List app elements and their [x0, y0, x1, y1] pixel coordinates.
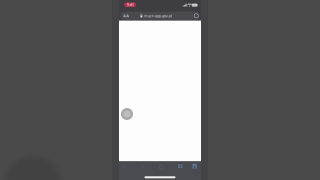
button[interactable]: AA — [121, 12, 131, 20]
staticText: 9:41 — [127, 2, 134, 7]
staticText: AA — [123, 13, 129, 18]
button[interactable]: Reload — [192, 12, 200, 20]
button[interactable]: Tabs — [176, 162, 185, 171]
staticText: mucn.app.gov.pl — [144, 13, 172, 18]
button[interactable]: mucn.app.gov.pl — [140, 12, 172, 20]
button[interactable]: Bookmarks — [190, 162, 199, 171]
